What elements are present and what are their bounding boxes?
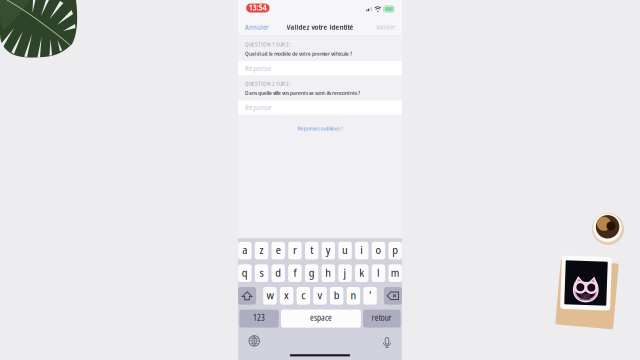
- staticText: a: [242, 242, 247, 257]
- button[interactable]: Dictate: [383, 336, 391, 346]
- button[interactable]: e: [271, 242, 285, 259]
- staticText: retour: [372, 312, 392, 323]
- staticText: z: [259, 242, 263, 257]
- staticText: g: [309, 265, 315, 280]
- button[interactable]: b: [330, 287, 343, 305]
- button[interactable]: f: [288, 264, 302, 282]
- staticText: s: [259, 265, 263, 280]
- staticText: k: [359, 265, 364, 280]
- staticText: o: [375, 242, 381, 257]
- button[interactable]: Change keyboard: [249, 336, 259, 346]
- staticText: v: [317, 287, 322, 303]
- button[interactable]: r: [288, 242, 302, 259]
- button[interactable]: Shift: [238, 287, 256, 305]
- staticText: n: [350, 287, 356, 303]
- button[interactable]: v: [313, 287, 327, 305]
- staticText: d: [275, 265, 281, 280]
- staticText: p: [392, 242, 398, 257]
- staticText: i: [360, 242, 363, 257]
- button[interactable]: p: [388, 242, 402, 259]
- staticText: x: [284, 287, 289, 303]
- staticText: 13:54: [249, 2, 267, 13]
- button[interactable]: Valider: [376, 22, 395, 32]
- button[interactable]: y: [322, 242, 335, 259]
- staticText: Réponse: [245, 63, 272, 73]
- button[interactable]: u: [338, 242, 352, 259]
- staticText: e: [276, 242, 281, 257]
- button[interactable]: 123: [239, 310, 279, 328]
- staticText: c: [301, 287, 305, 303]
- button[interactable]: retour: [363, 310, 401, 328]
- button[interactable]: i: [355, 242, 368, 259]
- staticText: y: [326, 242, 331, 257]
- staticText: Dans quelle ville vos parents se sont-il…: [245, 88, 360, 97]
- button[interactable]: espace: [281, 310, 361, 328]
- button[interactable]: c: [297, 287, 310, 305]
- button[interactable]: h: [322, 264, 335, 282]
- staticText: h: [325, 265, 331, 280]
- button[interactable]: x: [280, 287, 293, 305]
- staticText: m: [391, 265, 400, 280]
- button[interactable]: w: [263, 287, 277, 305]
- button[interactable]: a: [238, 242, 251, 259]
- button[interactable]: q: [238, 264, 251, 282]
- button[interactable]: ': [363, 287, 377, 305]
- button[interactable]: k: [355, 264, 368, 282]
- button[interactable]: n: [347, 287, 360, 305]
- staticText: t: [310, 242, 313, 257]
- button[interactable]: z: [255, 242, 268, 259]
- button[interactable]: j: [338, 264, 352, 282]
- staticText: Quel était le modèle de votre premier vé…: [245, 49, 352, 57]
- staticText: q: [242, 265, 248, 280]
- staticText: Validez votre identité: [286, 22, 353, 32]
- button[interactable]: t: [305, 242, 318, 259]
- staticText: r: [293, 242, 297, 257]
- staticText: Réponse: [245, 102, 272, 113]
- button[interactable]: Delete: [384, 287, 402, 305]
- staticText: Annuler: [245, 22, 268, 32]
- button[interactable]: d: [271, 264, 285, 282]
- staticText: f: [293, 265, 296, 280]
- staticText: j: [343, 265, 346, 280]
- staticText: QUESTION 2 SUR 2 :: [245, 79, 291, 87]
- button[interactable]: g: [305, 264, 318, 282]
- staticText: 123: [253, 312, 265, 323]
- staticText: b: [334, 287, 340, 303]
- staticText: QUESTION 1 SUR 2 :: [245, 40, 291, 48]
- button[interactable]: o: [372, 242, 385, 259]
- button[interactable]: Annuler: [245, 22, 268, 32]
- staticText: ': [369, 287, 371, 303]
- staticText: u: [342, 242, 348, 257]
- staticText: l: [377, 265, 380, 280]
- staticText: espace: [310, 312, 332, 323]
- staticText: w: [266, 287, 273, 303]
- staticText: Réponses oubliées ?: [297, 124, 342, 132]
- button[interactable]: l: [372, 264, 385, 282]
- button[interactable]: Réponses oubliées ?: [238, 114, 402, 137]
- button[interactable]: m: [388, 264, 402, 282]
- staticText: Valider: [376, 22, 395, 32]
- button[interactable]: s: [255, 264, 268, 282]
